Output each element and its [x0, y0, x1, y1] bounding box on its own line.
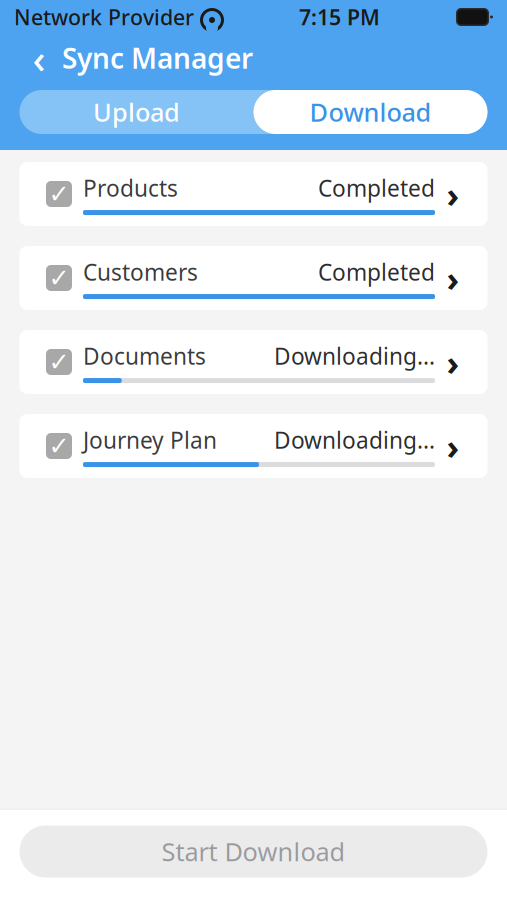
staticText: Downloading...: [274, 341, 435, 371]
staticText: Customers: [83, 257, 198, 287]
staticText: Upload: [93, 95, 180, 129]
button[interactable]: Download: [253, 90, 487, 134]
staticText: ‹: [32, 31, 45, 84]
staticText: ›: [446, 171, 459, 217]
staticText: ›: [446, 339, 459, 385]
staticText: Products: [83, 173, 178, 203]
staticText: Network Provider: [14, 3, 194, 31]
button[interactable]: Start Download: [19, 825, 487, 877]
staticText: Downloading...: [274, 425, 435, 455]
staticText: Journey Plan: [83, 425, 217, 455]
staticText: 7:15 PM: [299, 3, 380, 31]
staticText: ✓: [48, 432, 69, 460]
staticText: Documents: [83, 341, 206, 371]
button[interactable]: Upload: [19, 90, 253, 134]
staticText: Sync Manager: [62, 39, 253, 77]
staticText: Completed: [318, 257, 435, 287]
staticText: ✓: [48, 348, 69, 376]
staticText: ›: [446, 423, 459, 469]
staticText: ›: [446, 255, 459, 301]
button[interactable]: ✓: [19, 414, 487, 478]
staticText: Completed: [318, 173, 435, 203]
button[interactable]: ✓: [19, 330, 487, 394]
button[interactable]: ✓: [19, 162, 487, 226]
staticText: Download: [309, 95, 431, 129]
staticText: ✓: [48, 264, 69, 292]
staticText: ✓: [48, 180, 69, 208]
staticText: Start Download: [161, 835, 345, 868]
button[interactable]: ✓: [19, 246, 487, 310]
button[interactable]: Back: [22, 38, 56, 78]
